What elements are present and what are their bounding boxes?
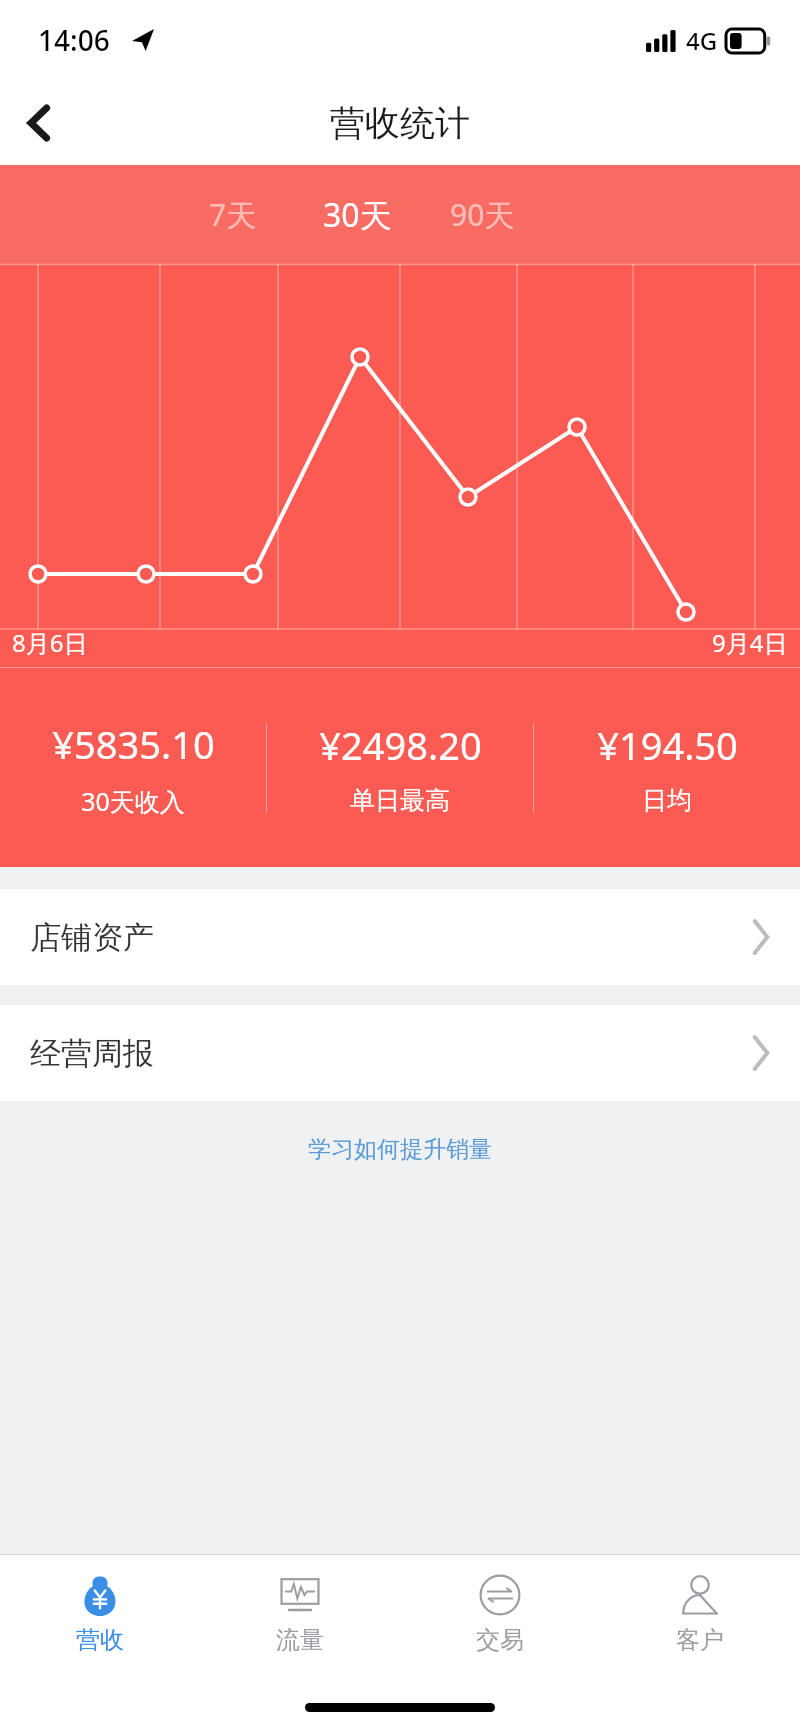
button[interactable]: 客户	[600, 1555, 800, 1673]
button[interactable]: 7天	[170, 165, 295, 264]
button[interactable]: ¥5835.10	[0, 718, 266, 818]
staticText: 7天	[209, 194, 257, 235]
staticText: 90天	[450, 194, 515, 235]
staticText: 30天	[323, 193, 392, 237]
button[interactable]: 流量	[200, 1555, 400, 1673]
staticText: 客户	[676, 1625, 724, 1655]
button[interactable]: 经营周报	[0, 1005, 800, 1101]
staticText: 经营周报	[30, 1034, 154, 1073]
button[interactable]: ¥194.50	[534, 719, 800, 816]
button[interactable]: 营收	[0, 1555, 200, 1673]
staticText: ¥194.50	[597, 719, 738, 771]
staticText: ¥5835.10	[52, 718, 215, 770]
staticText: 4G	[686, 24, 718, 57]
staticText: 交易	[476, 1625, 524, 1655]
button[interactable]: 30天	[295, 165, 420, 264]
staticText: 营收	[76, 1625, 124, 1655]
staticText: 日均	[642, 785, 692, 816]
staticText: 店铺资产	[30, 918, 154, 957]
button[interactable]: 店铺资产	[0, 889, 800, 985]
staticText: 9月4日	[712, 626, 788, 659]
staticText: 营收统计	[330, 101, 470, 145]
staticText: 流量	[276, 1625, 324, 1655]
staticText: 学习如何提升销量	[308, 1135, 492, 1164]
staticText: 14:06	[38, 21, 110, 59]
staticText: 单日最高	[350, 785, 450, 816]
staticText: ¥2498.20	[319, 719, 482, 771]
staticText: 30天收入	[81, 784, 185, 818]
button[interactable]: 交易	[400, 1555, 600, 1673]
button[interactable]: Back	[0, 83, 80, 163]
staticText: 8月6日	[12, 626, 88, 659]
button[interactable]: ¥2498.20	[267, 719, 533, 816]
button[interactable]: 90天	[420, 165, 545, 264]
button[interactable]: 学习如何提升销量	[0, 1101, 800, 1197]
